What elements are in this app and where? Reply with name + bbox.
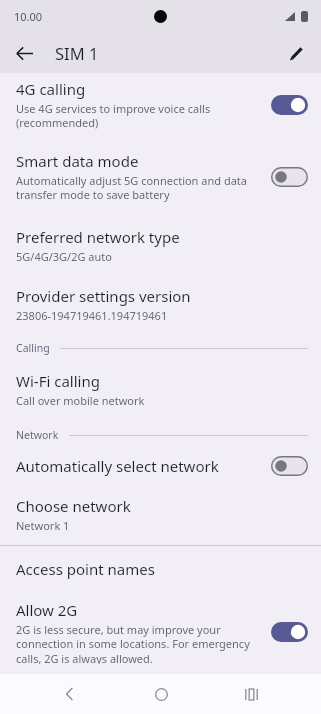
staticText: Automatically adjust 5G connection and d… <box>16 173 259 203</box>
button[interactable]: Recent apps <box>230 674 272 714</box>
button[interactable]: Back <box>6 35 42 71</box>
staticText: Choose network <box>16 496 131 516</box>
button[interactable]: Preferred network type <box>0 211 321 272</box>
button[interactable]: Provider settings version <box>0 272 321 329</box>
staticText: 5G/4G/3G/2G auto <box>16 249 112 264</box>
staticText: Call over mobile network <box>16 393 145 408</box>
button[interactable]: Automatically select network <box>0 446 321 484</box>
staticText: SIM 1 <box>55 42 99 64</box>
button[interactable]: Edit <box>278 35 314 71</box>
staticText: 23806-194719461.194719461 <box>16 308 168 323</box>
staticText: Provider settings version <box>16 286 191 306</box>
button[interactable]: Home <box>140 674 182 714</box>
staticText: Calling <box>16 341 50 355</box>
button[interactable]: Wi-Fi calling <box>0 359 321 416</box>
button[interactable]: 4G calling <box>0 73 321 139</box>
button[interactable]: Smart data mode <box>0 139 321 211</box>
button[interactable]: Allow 2G <box>0 592 321 674</box>
staticText: 2G is less secure, but may improve your … <box>16 622 259 664</box>
button[interactable]: Back <box>49 674 91 714</box>
staticText: Smart data mode <box>16 151 139 171</box>
staticText: Wi-Fi calling <box>16 371 100 391</box>
staticText: Allow 2G <box>16 600 78 620</box>
staticText: Use 4G services to improve voice calls (… <box>16 101 259 131</box>
staticText: 4G calling <box>16 79 86 99</box>
staticText: Access point names <box>16 559 155 579</box>
staticText: Network 1 <box>16 518 70 533</box>
staticText: Preferred network type <box>16 227 180 247</box>
button[interactable]: Access point names <box>0 546 321 592</box>
staticText: Network <box>16 428 59 442</box>
staticText: 10.00 <box>14 9 43 24</box>
staticText: Automatically select network <box>16 456 219 476</box>
button[interactable]: Choose network <box>0 484 321 545</box>
